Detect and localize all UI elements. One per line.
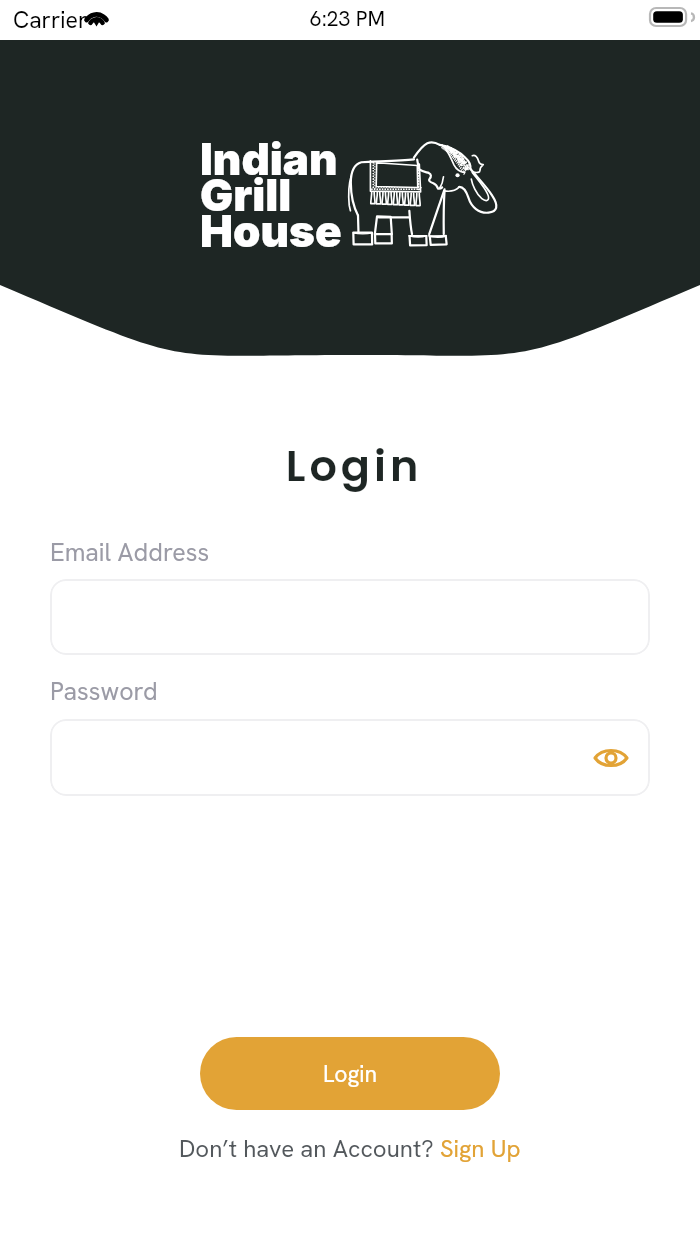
button[interactable] <box>50 579 650 655</box>
button[interactable]: Sign Up <box>440 1133 521 1164</box>
staticText: Email Address <box>50 536 210 569</box>
staticText: Carrier <box>13 5 88 35</box>
staticText: 6:23 PM <box>310 5 386 32</box>
staticText: Login <box>4 436 700 496</box>
button[interactable]: Show password <box>588 735 634 781</box>
staticText: Indian Grill House <box>200 132 342 257</box>
button[interactable]: Login <box>200 1037 500 1110</box>
staticText: Login <box>323 1059 378 1089</box>
staticText: Don’t have an Account? <box>179 1133 440 1164</box>
staticText: Password <box>50 675 158 708</box>
